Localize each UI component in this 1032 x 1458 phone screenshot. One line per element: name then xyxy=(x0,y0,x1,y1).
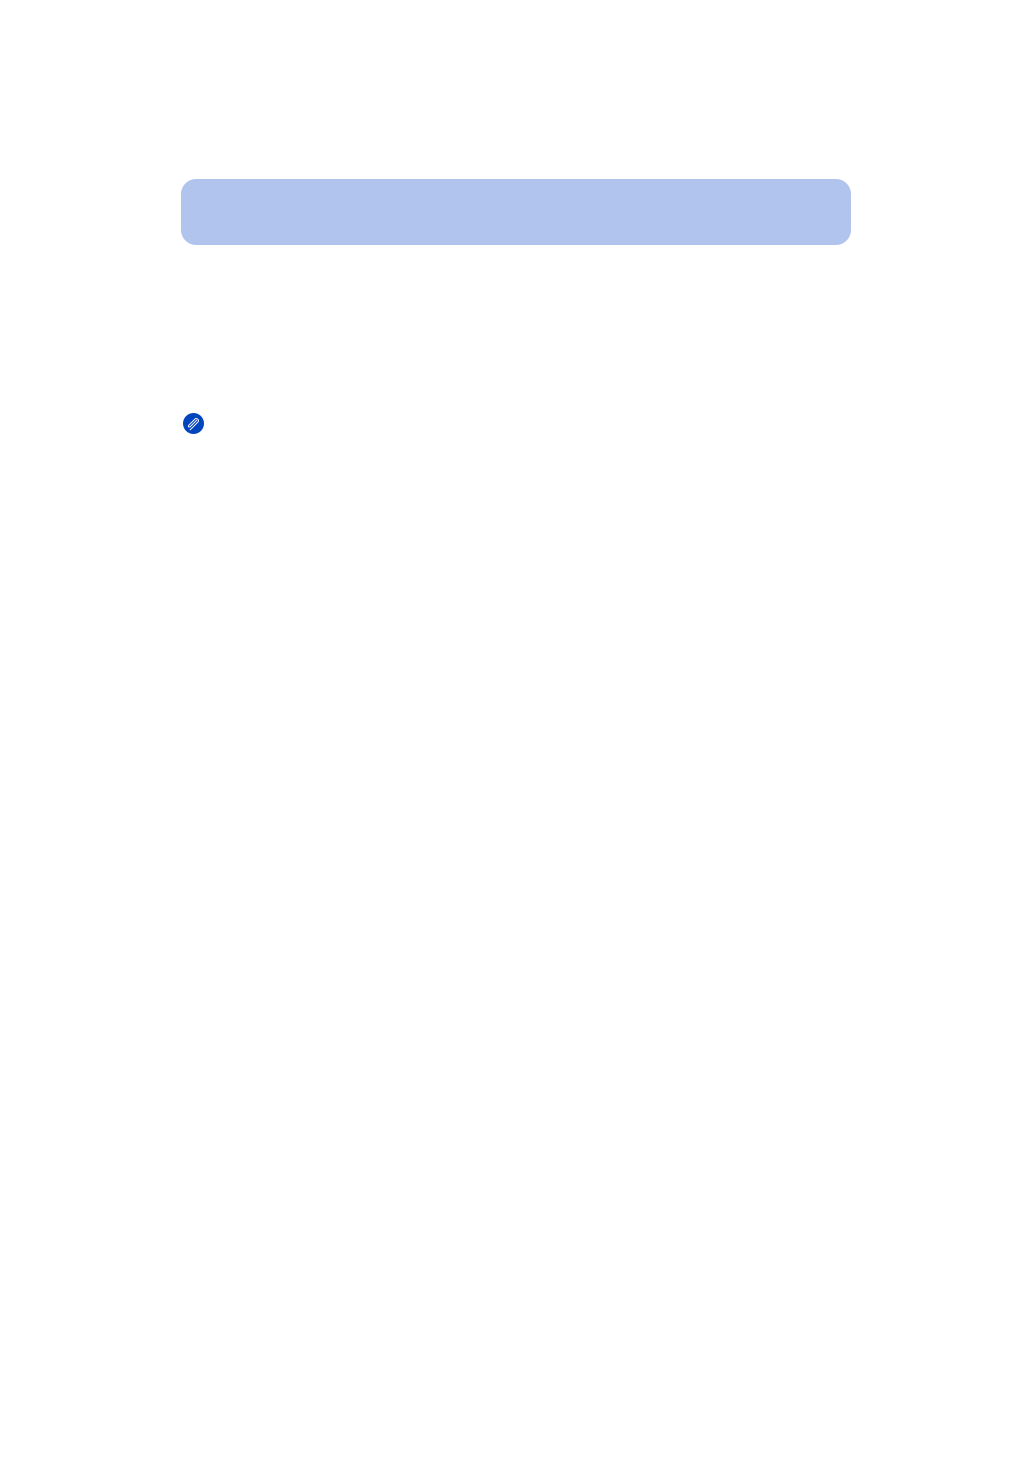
button[interactable]: Attach file xyxy=(183,413,204,434)
